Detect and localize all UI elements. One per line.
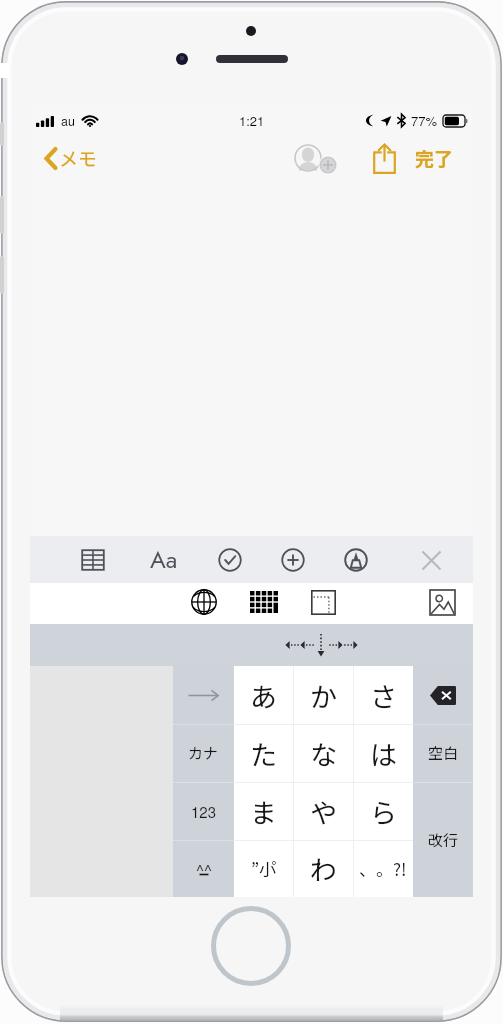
staticText: や <box>310 792 337 831</box>
staticText: な <box>310 734 337 773</box>
button[interactable]: ”小゚ <box>234 840 293 897</box>
button[interactable]: Numeric keypad <box>246 584 282 620</box>
button[interactable]: Text format <box>144 540 184 579</box>
staticText: は <box>370 734 397 773</box>
button[interactable]: 、。?! <box>353 840 413 897</box>
button[interactable]: Move cursor right <box>344 634 358 656</box>
button[interactable]: Move cursor right <box>329 634 343 656</box>
button[interactable]: ら <box>353 782 413 840</box>
button[interactable]: メモ <box>30 144 106 172</box>
button[interactable]: Delete <box>413 666 473 724</box>
button[interactable] <box>173 666 234 724</box>
staticText: 完了 <box>415 144 454 172</box>
staticText: 1:21 <box>239 111 265 130</box>
button[interactable]: Close keyboard <box>412 541 450 579</box>
button[interactable]: Switch language <box>186 584 222 620</box>
staticText: ま <box>250 792 277 831</box>
button[interactable]: 改行 <box>413 782 473 897</box>
button[interactable]: Markup <box>336 540 376 579</box>
staticText: au <box>61 112 75 130</box>
button[interactable]: Move cursor left <box>285 634 299 656</box>
button[interactable]: Insert photo <box>424 584 460 620</box>
staticText: ら <box>370 792 397 831</box>
button[interactable]: な <box>293 724 353 782</box>
button[interactable]: 完了 <box>410 137 458 179</box>
button[interactable]: Insert <box>273 540 313 579</box>
button[interactable]: Move cursor vertically <box>314 632 328 658</box>
staticText: た <box>250 734 277 773</box>
button[interactable]: Table <box>73 540 113 579</box>
button[interactable]: Move cursor left <box>300 634 314 656</box>
button[interactable]: ま <box>234 782 293 840</box>
staticText: か <box>310 676 337 715</box>
button[interactable]: あ <box>234 666 293 724</box>
staticText: ”小゚ <box>251 856 277 881</box>
button[interactable]: や <box>293 782 353 840</box>
staticText: 77% <box>411 111 438 130</box>
staticText: メモ <box>59 144 98 172</box>
staticText: 空白 <box>428 742 459 764</box>
button[interactable]: Add people <box>288 138 336 178</box>
button[interactable]: Checklist <box>210 540 250 579</box>
button[interactable]: た <box>234 724 293 782</box>
staticText: さ <box>370 676 397 715</box>
button[interactable]: 123 <box>173 782 234 840</box>
button[interactable]: Share <box>362 137 406 179</box>
staticText: 123 <box>191 801 217 822</box>
button[interactable]: One-handed keyboard <box>305 584 341 620</box>
button[interactable]: か <box>293 666 353 724</box>
button[interactable]: は <box>353 724 413 782</box>
staticText: ^^ <box>196 857 212 881</box>
button[interactable]: わ <box>293 840 353 897</box>
button[interactable]: ^^ <box>173 840 234 897</box>
staticText: 、。?! <box>359 856 407 881</box>
button[interactable]: さ <box>353 666 413 724</box>
staticText: カナ <box>188 742 219 764</box>
button[interactable]: 空白 <box>413 724 473 782</box>
staticText: Aa <box>150 542 178 577</box>
staticText: あ <box>250 676 277 715</box>
staticText: わ <box>310 849 337 888</box>
staticText: 改行 <box>428 829 459 851</box>
button[interactable]: カナ <box>173 724 234 782</box>
